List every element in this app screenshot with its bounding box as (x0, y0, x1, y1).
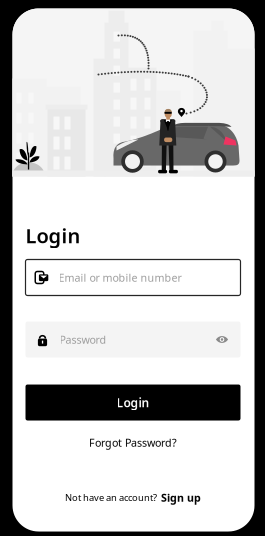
staticText: Login (25, 222, 80, 249)
button[interactable]: Sign up (161, 490, 201, 505)
staticText: Email or mobile number (58, 270, 181, 285)
staticText: Forgot Password? (89, 435, 177, 450)
button[interactable]: Show password (215, 334, 228, 344)
staticText: Sign up (161, 490, 201, 505)
button[interactable]: Forgot Password? (25, 434, 240, 450)
staticText: Password (59, 332, 106, 347)
staticText: Not have an account? (65, 491, 157, 504)
staticText: Login (116, 394, 149, 410)
button[interactable]: Login (25, 384, 240, 420)
